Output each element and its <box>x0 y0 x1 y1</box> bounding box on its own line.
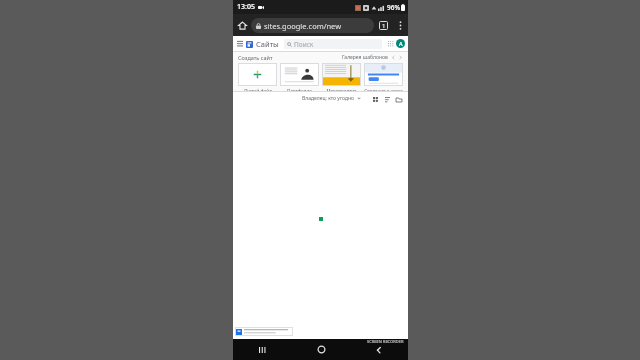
button[interactable]: Back <box>350 339 408 360</box>
button[interactable]: Tabs <box>374 16 392 34</box>
button[interactable]: Sort <box>382 94 392 104</box>
staticText: A <box>399 40 403 47</box>
button[interactable]: Folder <box>394 94 404 104</box>
staticText: Создать сайт <box>238 54 273 61</box>
button[interactable]: Previous <box>391 55 396 60</box>
button[interactable]: sites.google.com/new <box>251 18 374 33</box>
button[interactable]: Мероприятие <box>322 63 361 91</box>
staticText: Галерея шаблонов <box>342 54 388 61</box>
button[interactable]: Home <box>233 16 251 34</box>
button[interactable]: Home <box>292 339 350 360</box>
staticText: Портфолио <box>287 88 312 91</box>
button[interactable]: Menu <box>233 37 246 50</box>
staticText: sites.google.com/new <box>264 21 342 31</box>
staticText: 1 <box>382 22 386 30</box>
staticText: Пустой файл <box>244 88 272 91</box>
staticText: Владелец: кто угодно <box>302 95 355 102</box>
staticText: SCREEN RECORDER <box>367 339 404 344</box>
button[interactable]: Next <box>398 55 403 60</box>
button[interactable]: Пустой файл <box>238 63 277 91</box>
staticText: Мероприятие <box>326 88 357 91</box>
button[interactable]: Сайты <box>246 39 279 49</box>
button[interactable]: Recents <box>233 339 292 360</box>
staticText: 13:05 <box>237 2 255 12</box>
button[interactable]: Владелец: кто угодно <box>300 95 363 102</box>
staticText: Сайты <box>256 39 279 49</box>
button[interactable]: Портфолио <box>280 63 319 91</box>
staticText: Сведения о курсе <box>364 88 403 91</box>
staticText: 96% <box>387 3 400 12</box>
button[interactable] <box>235 327 293 336</box>
button[interactable]: Grid view <box>370 94 380 104</box>
button[interactable]: Apps <box>385 38 396 49</box>
button[interactable]: Сведения о курсе <box>364 63 403 91</box>
staticText: Поиск <box>294 40 314 49</box>
button[interactable]: Account <box>396 39 405 48</box>
button[interactable]: Поиск <box>284 39 382 49</box>
button[interactable]: More options <box>392 17 408 33</box>
